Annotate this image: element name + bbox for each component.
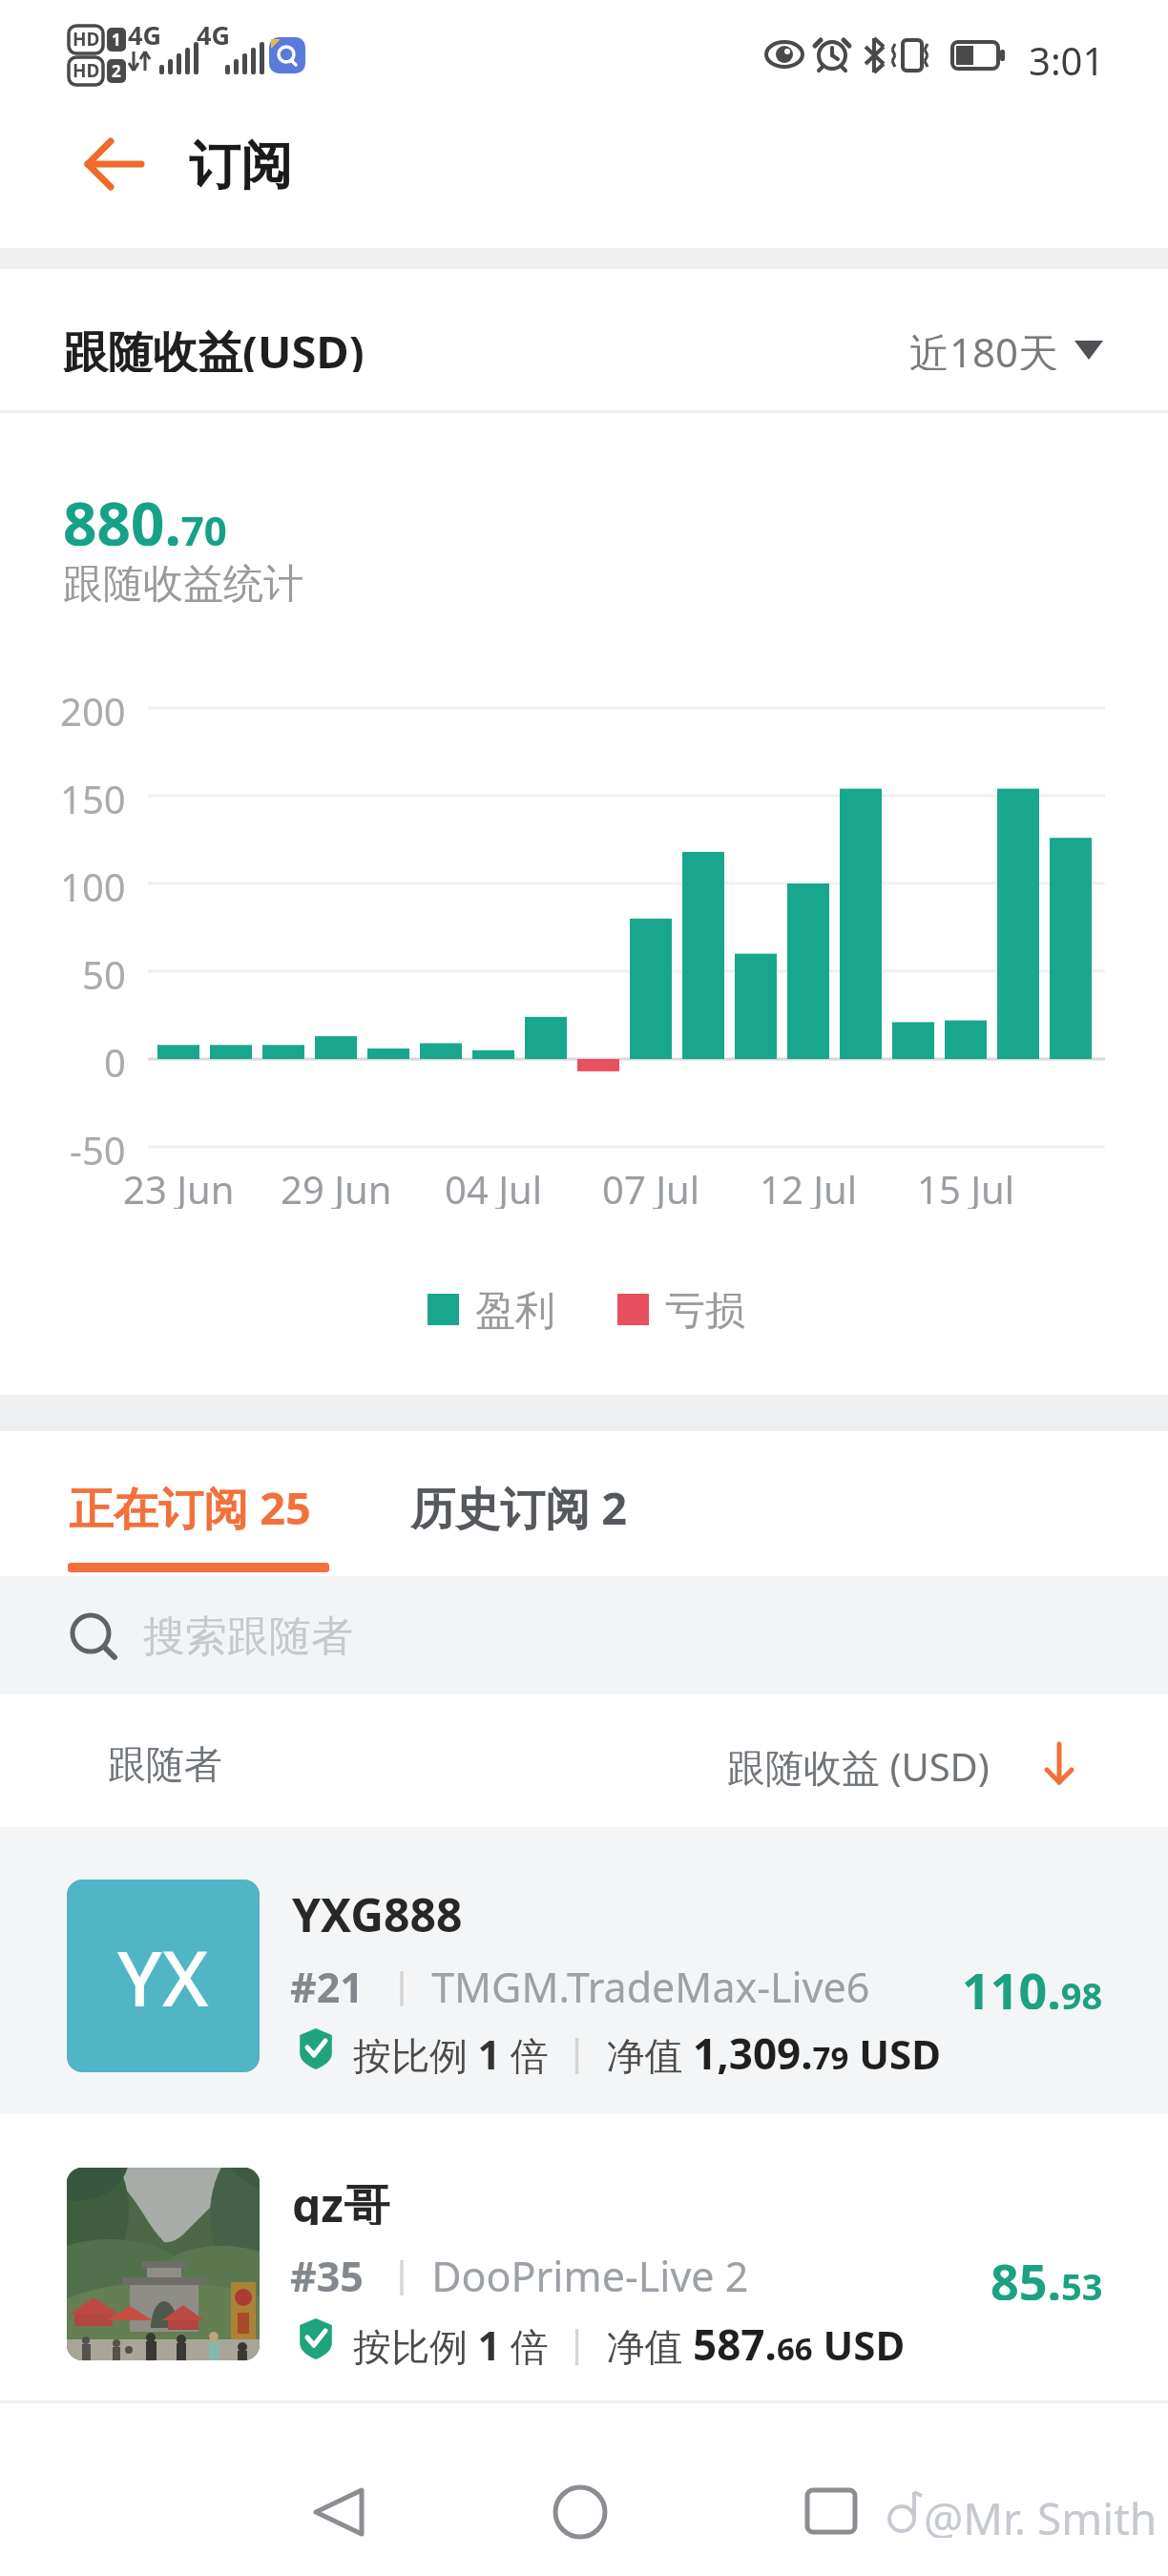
- staticText: 150: [60, 773, 126, 819]
- staticText: 2: [112, 60, 121, 82]
- staticText: YXG888: [292, 1883, 463, 1935]
- staticText: 按比例 1 倍 丨 净值 1,309.79 USD: [353, 2025, 941, 2074]
- staticText: 04 Jul: [445, 1163, 543, 1209]
- staticText: gz哥: [292, 2173, 390, 2225]
- staticText: #35 丨 DooPrime-Live 2: [290, 2248, 749, 2296]
- button[interactable]: [773, 2462, 887, 2566]
- button[interactable]: 历史订阅 2: [399, 1460, 676, 1555]
- staticText: 23 Jun: [123, 1163, 235, 1209]
- staticText: @Mr. Smith: [924, 2488, 1158, 2538]
- staticText: 按比例 1 倍 丨 净值 587.66 USD: [353, 2316, 906, 2365]
- staticText: 亏损: [665, 1286, 745, 1332]
- staticText: 搜索跟随者: [143, 1610, 353, 1660]
- staticText: 正在订阅 25: [69, 1477, 311, 1538]
- button[interactable]: [525, 2462, 639, 2566]
- staticText: 跟随收益统计: [63, 559, 303, 605]
- button[interactable]: [706, 1719, 1097, 1807]
- staticText: 200: [60, 685, 126, 731]
- staticText: 100: [60, 861, 126, 906]
- button[interactable]: [0, 1827, 1168, 2114]
- button[interactable]: [0, 1576, 1168, 1694]
- button[interactable]: [286, 2462, 401, 2566]
- staticText: 880.70: [63, 483, 227, 546]
- staticText: HD: [73, 27, 100, 52]
- staticText: 盈利: [475, 1286, 555, 1332]
- staticText: 跟随者: [108, 1740, 222, 1788]
- button[interactable]: 近180天: [897, 324, 1059, 370]
- staticText: 0: [104, 1036, 126, 1082]
- staticText: 跟随收益(USD): [63, 321, 365, 372]
- staticText: 3:01: [1029, 34, 1105, 76]
- staticText: #21 丨 TMGM.TradeMax-Live6: [290, 1959, 870, 2006]
- staticText: 85.53: [991, 2247, 1103, 2300]
- staticText: YX: [117, 1924, 209, 2028]
- button[interactable]: 正在订阅 25: [57, 1460, 344, 1555]
- staticText: 1: [112, 29, 121, 51]
- staticText: 15 Jul: [917, 1163, 1015, 1209]
- staticText: 近180天: [909, 324, 1059, 370]
- staticText: 07 Jul: [602, 1163, 700, 1209]
- button[interactable]: [67, 124, 153, 204]
- staticText: 跟随收益 (USD): [727, 1740, 990, 1788]
- staticText: 4G: [197, 17, 230, 52]
- staticText: 历史订阅 2: [410, 1477, 628, 1538]
- staticText: 订阅: [189, 134, 292, 195]
- staticText: 50: [82, 948, 126, 994]
- staticText: -50: [70, 1124, 126, 1170]
- button[interactable]: [0, 2120, 1168, 2400]
- staticText: 110.98: [962, 1956, 1103, 2009]
- staticText: 29 Jun: [281, 1163, 392, 1209]
- staticText: 4G: [128, 17, 161, 52]
- staticText: 12 Jul: [760, 1163, 858, 1209]
- staticText: HD: [73, 58, 100, 83]
